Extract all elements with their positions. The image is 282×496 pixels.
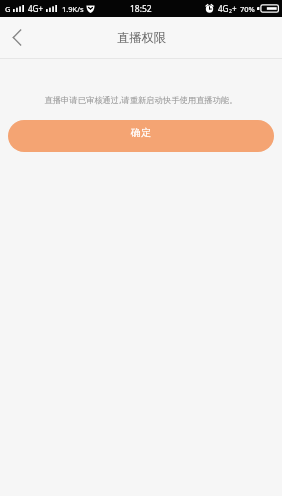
staticText: 1.9K/s	[62, 4, 84, 14]
staticText: 2	[229, 8, 232, 15]
staticText: G	[5, 4, 11, 14]
staticText: 4G+	[28, 3, 43, 14]
staticText: +	[232, 3, 237, 14]
staticText: 直播申请已审核通过,请重新启动快手使用直播功能。	[10, 94, 272, 105]
staticText: 4G	[218, 3, 229, 14]
staticText: 70%	[240, 4, 255, 14]
staticText: 18:52	[130, 3, 152, 15]
staticText: 确定	[131, 126, 151, 139]
button[interactable]: Back	[0, 17, 34, 58]
staticText: 直播权限	[117, 30, 166, 45]
button[interactable]: 确定	[8, 120, 274, 152]
